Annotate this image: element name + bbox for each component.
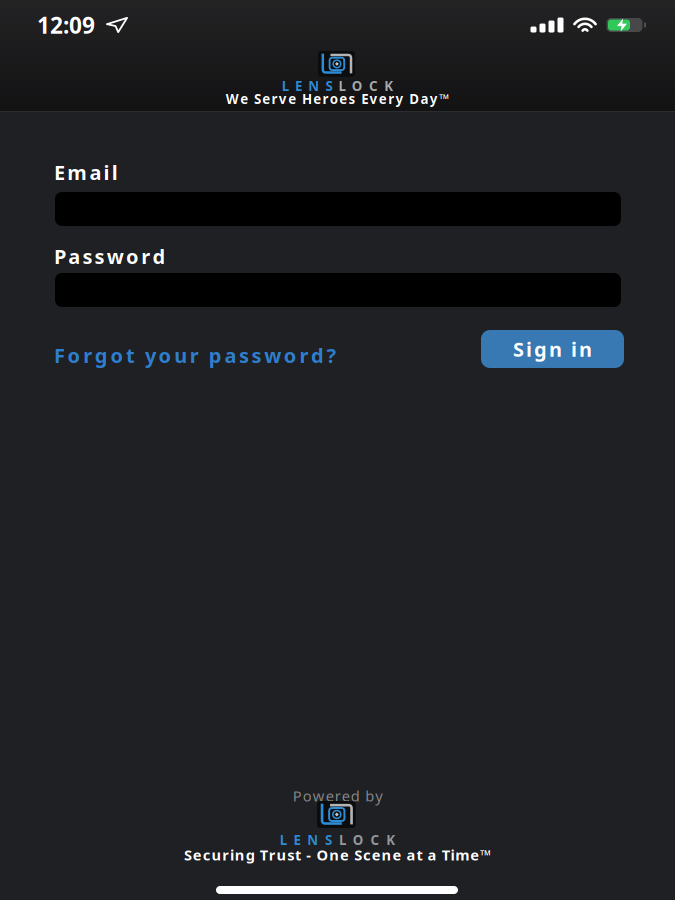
staticText: t [295,845,301,864]
staticText: L [282,77,289,95]
staticText: S [325,831,332,849]
staticText: c [203,845,211,864]
staticText: w [313,786,325,805]
staticText: C [370,831,379,849]
staticText: a [68,243,80,270]
staticText: e [340,845,349,864]
staticText: N [308,77,319,95]
staticText: s [82,243,92,270]
staticText: n [549,336,562,362]
staticText: e [288,90,296,108]
staticText: l [112,159,118,186]
staticText: s [239,342,249,369]
staticText: e [372,845,381,864]
staticText: e [392,845,401,864]
staticText: S [354,845,362,864]
staticText: K [386,831,395,849]
staticText: e [342,786,350,805]
staticText: r [269,845,276,864]
staticText: a [421,90,429,108]
staticText: m [455,845,469,864]
staticText: O [353,831,364,849]
staticText: a [407,845,416,864]
staticText: e [240,90,248,108]
staticText: d [152,243,165,270]
staticText: s [95,243,105,270]
staticText: b [365,786,374,805]
staticText: L [280,831,287,849]
staticText: - [306,845,311,864]
staticText: W [226,90,239,108]
staticText: ? [327,342,337,369]
staticText: o [126,243,139,270]
staticText: D [409,90,419,108]
staticText: d [351,786,360,805]
staticText: 12:09 [37,10,95,40]
staticText: r [83,342,92,369]
staticText: P [54,243,66,270]
staticText: t [126,342,135,369]
staticText: s [287,845,294,864]
staticText: e [262,90,270,108]
staticText: a [224,342,236,369]
staticText: i [571,336,577,362]
staticText: v [369,90,377,108]
staticText: r [190,342,199,369]
staticText: r [388,90,394,108]
staticText: e [193,845,202,864]
staticText: e [339,90,347,108]
staticText: s [348,90,355,108]
staticText: e [326,786,334,805]
staticText: o [68,342,81,369]
staticText: u [276,845,286,864]
staticText: S [513,336,524,362]
staticText: i [450,845,454,864]
staticText: a [428,845,437,864]
staticText: o [284,342,297,369]
staticText: ™ [439,90,449,108]
staticText: g [95,342,108,369]
staticText: E [295,77,302,95]
staticText: C [369,77,378,95]
staticText: K [384,77,393,95]
staticText: y [430,90,438,108]
staticText: g [246,845,255,864]
staticText: S [254,90,261,108]
staticText: S [325,77,332,95]
staticText: i [230,845,234,864]
staticText: e [379,90,387,108]
staticText: r [335,786,341,805]
staticText: n [579,336,592,362]
staticText: a [89,159,101,186]
staticText: w [264,342,281,369]
staticText: n [329,845,339,864]
staticText: L [339,77,346,95]
staticText: g [534,336,547,362]
staticText: S [184,845,192,864]
staticText: u [211,845,221,864]
staticText: T [442,845,450,864]
staticText: e [470,845,479,864]
button[interactable]: S [481,330,624,368]
staticText: E [361,90,368,108]
staticText: r [222,845,229,864]
staticText: o [110,342,123,369]
staticText: o [303,786,312,805]
staticText: d [311,342,324,369]
staticText: o [159,342,172,369]
staticText: H [302,90,312,108]
button[interactable]: F [54,342,337,369]
staticText: n [382,845,392,864]
staticText: r [322,90,328,108]
staticText: O [316,845,328,864]
staticText: L [339,831,346,849]
staticText: y [145,342,156,369]
staticText: E [54,159,65,186]
staticText: c [363,845,371,864]
staticText: ™ [480,845,491,864]
staticText: T [260,845,268,864]
staticText: y [395,90,403,108]
staticText: N [307,831,318,849]
